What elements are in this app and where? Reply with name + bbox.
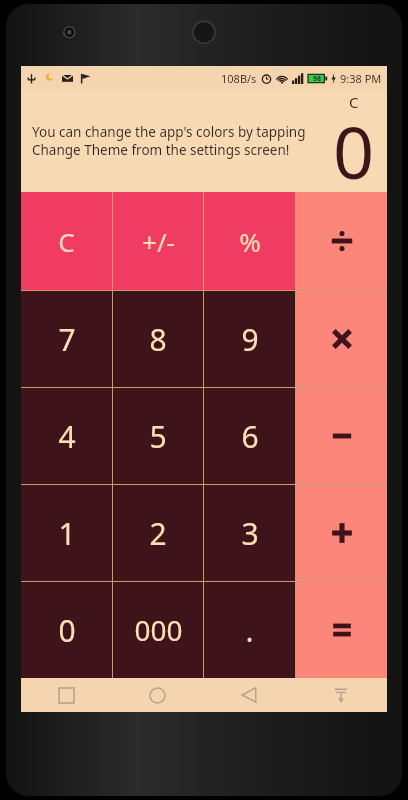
button[interactable]: 9 bbox=[204, 291, 295, 387]
staticText: % bbox=[239, 224, 261, 259]
staticText: . bbox=[245, 610, 254, 651]
staticText: +/- bbox=[142, 224, 175, 259]
button[interactable]: C bbox=[21, 192, 112, 290]
button[interactable]: 0 bbox=[21, 582, 112, 678]
button[interactable]: Subtract bbox=[296, 388, 387, 484]
staticText: 9:38 PM bbox=[340, 71, 382, 86]
button[interactable]: +/- bbox=[113, 192, 203, 290]
staticText: 0 bbox=[58, 610, 76, 651]
button[interactable]: 000 bbox=[113, 582, 203, 678]
staticText: 8 bbox=[149, 319, 167, 360]
button[interactable]: Divide bbox=[296, 192, 387, 290]
button[interactable]: Back bbox=[203, 678, 295, 712]
staticText: 3 bbox=[241, 513, 259, 554]
button[interactable]: Equals bbox=[296, 582, 387, 678]
staticText: 4 bbox=[58, 416, 76, 457]
staticText: 6 bbox=[241, 416, 259, 457]
staticText: 0 bbox=[333, 102, 375, 182]
staticText: 9 bbox=[241, 319, 259, 360]
button[interactable]: Multiply bbox=[296, 291, 387, 387]
button[interactable]: 5 bbox=[113, 388, 203, 484]
button[interactable]: Recent apps bbox=[21, 678, 112, 712]
button[interactable]: 6 bbox=[204, 388, 295, 484]
staticText: 98 bbox=[313, 74, 322, 84]
staticText: C bbox=[349, 92, 359, 112]
button[interactable]: Collapse bbox=[295, 678, 387, 712]
staticText: 5 bbox=[149, 416, 167, 457]
button[interactable]: 1 bbox=[21, 485, 112, 581]
button[interactable]: 3 bbox=[204, 485, 295, 581]
staticText: 1 bbox=[58, 513, 76, 554]
button[interactable]: . bbox=[204, 582, 295, 678]
staticText: You can change the app's colors by tappi… bbox=[32, 123, 309, 159]
staticText: 108B/s bbox=[221, 71, 257, 86]
button[interactable]: Add bbox=[296, 485, 387, 581]
button[interactable]: Home bbox=[112, 678, 203, 712]
button[interactable]: 8 bbox=[113, 291, 203, 387]
button[interactable]: 4 bbox=[21, 388, 112, 484]
staticText: 000 bbox=[134, 611, 183, 649]
button[interactable]: 2 bbox=[113, 485, 203, 581]
staticText: 2 bbox=[149, 513, 167, 554]
button[interactable]: 7 bbox=[21, 291, 112, 387]
button[interactable]: % bbox=[204, 192, 295, 290]
staticText: 7 bbox=[58, 319, 76, 360]
staticText: C bbox=[58, 224, 75, 259]
